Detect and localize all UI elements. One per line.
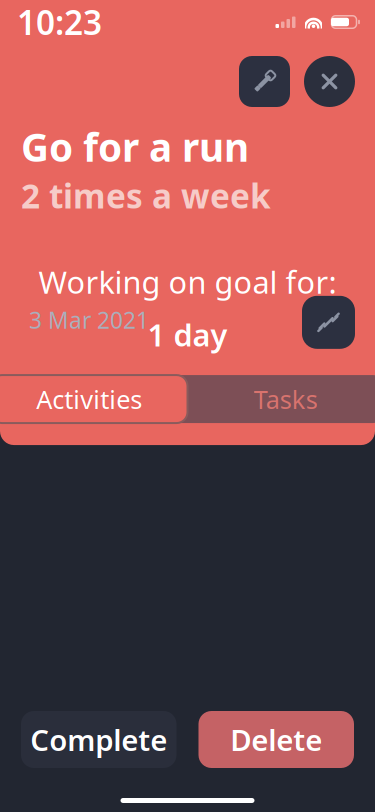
button[interactable]: Activity type [302,296,355,349]
staticText: 2 times a week [21,173,271,218]
button[interactable]: Activities [0,375,187,423]
button[interactable]: Close [304,56,355,107]
staticText: Working on goal for: [38,262,336,302]
staticText: Complete [30,720,167,759]
staticText: Delete [230,720,322,759]
button[interactable]: Complete [21,711,176,768]
staticText: 10:23 [17,0,102,44]
staticText: Activities [36,382,142,416]
button[interactable]: Delete [198,711,354,768]
staticText: Go for a run [21,121,249,172]
staticText: Tasks [254,382,318,416]
button[interactable]: Tasks [187,375,375,423]
staticText: 1 day [147,314,227,355]
button[interactable]: Edit [239,56,290,107]
staticText: 3 Mar 2021 [29,305,149,335]
